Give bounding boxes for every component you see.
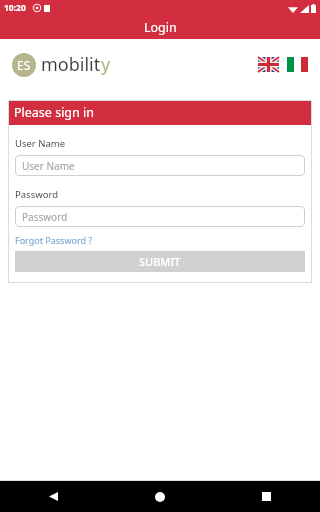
staticText: Forgot Password ? [15,234,93,246]
staticText: mobilit [41,52,101,77]
staticText: SUBMIT [139,254,181,269]
button[interactable]: English language [258,57,279,72]
button[interactable]: Password [15,206,305,227]
staticText: y [101,52,111,77]
button[interactable]: Home [106,481,213,512]
button[interactable]: Italian language [287,57,308,72]
button[interactable]: Back [0,481,106,512]
button[interactable]: Recent apps [213,481,320,512]
button[interactable]: User Name [15,155,305,176]
staticText: Login [144,19,177,36]
staticText: Password [15,188,58,201]
button[interactable]: SUBMIT [15,251,305,272]
button[interactable]: Forgot Password ? [15,234,93,246]
staticText: ES [17,57,31,73]
staticText: User Name [22,159,75,173]
staticText: Password [22,210,68,224]
staticText: Please sign in [14,104,94,121]
staticText: 10:20 [4,2,26,14]
staticText: User Name [15,137,66,150]
